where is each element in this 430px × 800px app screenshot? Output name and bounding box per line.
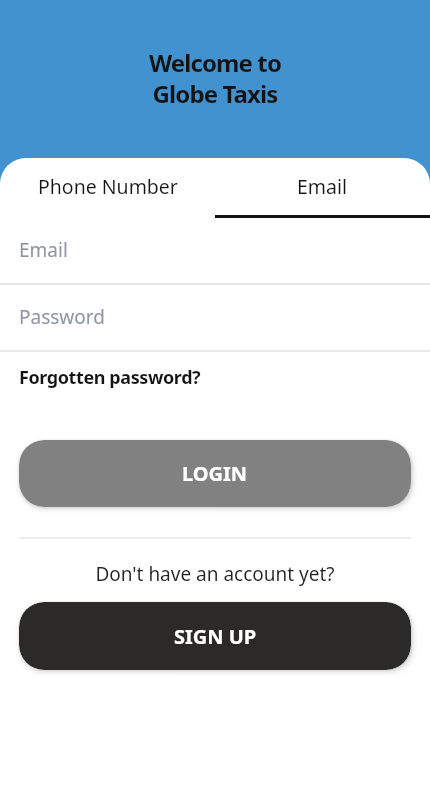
button[interactable]: Phone Number [0,158,215,218]
button[interactable]: Forgotten password? [19,365,201,390]
button[interactable]: Email [215,158,430,218]
staticText: Phone Number [38,173,178,200]
button[interactable]: SIGN UP [19,602,411,670]
staticText: Welcome to [0,46,430,79]
staticText: LOGIN [182,460,248,487]
staticText: Email [19,237,68,263]
staticText: SIGN UP [174,623,257,650]
staticText: Globe Taxis [0,77,430,110]
staticText: Don't have an account yet? [0,561,430,587]
staticText: Email [297,173,348,200]
staticText: Password [19,304,105,330]
button[interactable]: LOGIN [19,440,411,507]
